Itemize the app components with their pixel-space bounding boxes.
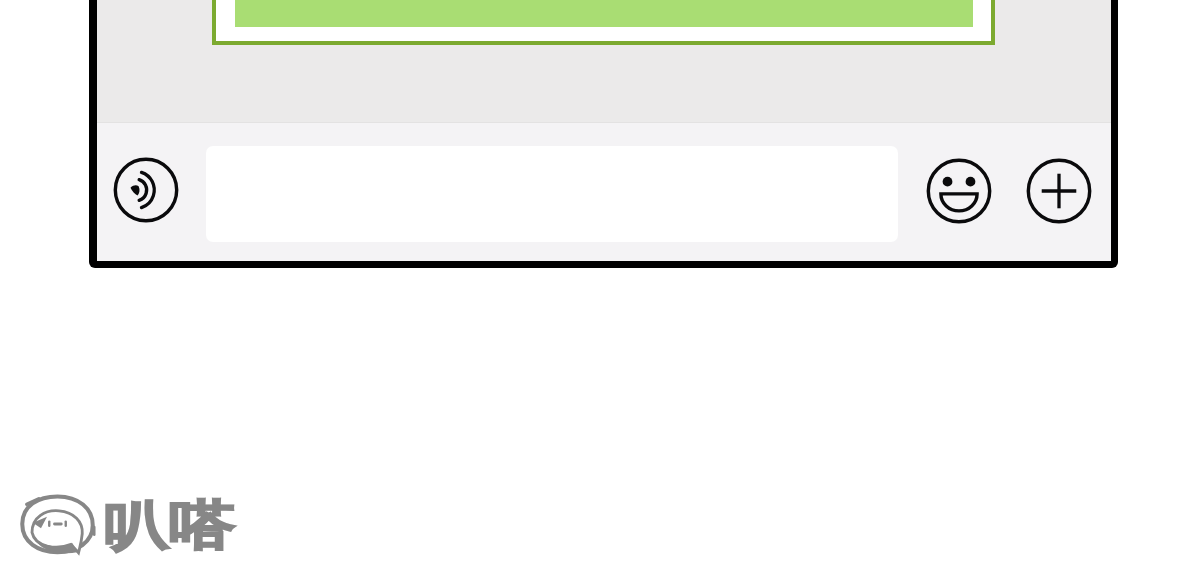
button[interactable]: Voice message — [113, 157, 179, 223]
staticText: 叭嗒 — [102, 493, 234, 559]
button[interactable]: More — [1026, 158, 1092, 224]
button[interactable]: Emoji — [926, 158, 992, 224]
